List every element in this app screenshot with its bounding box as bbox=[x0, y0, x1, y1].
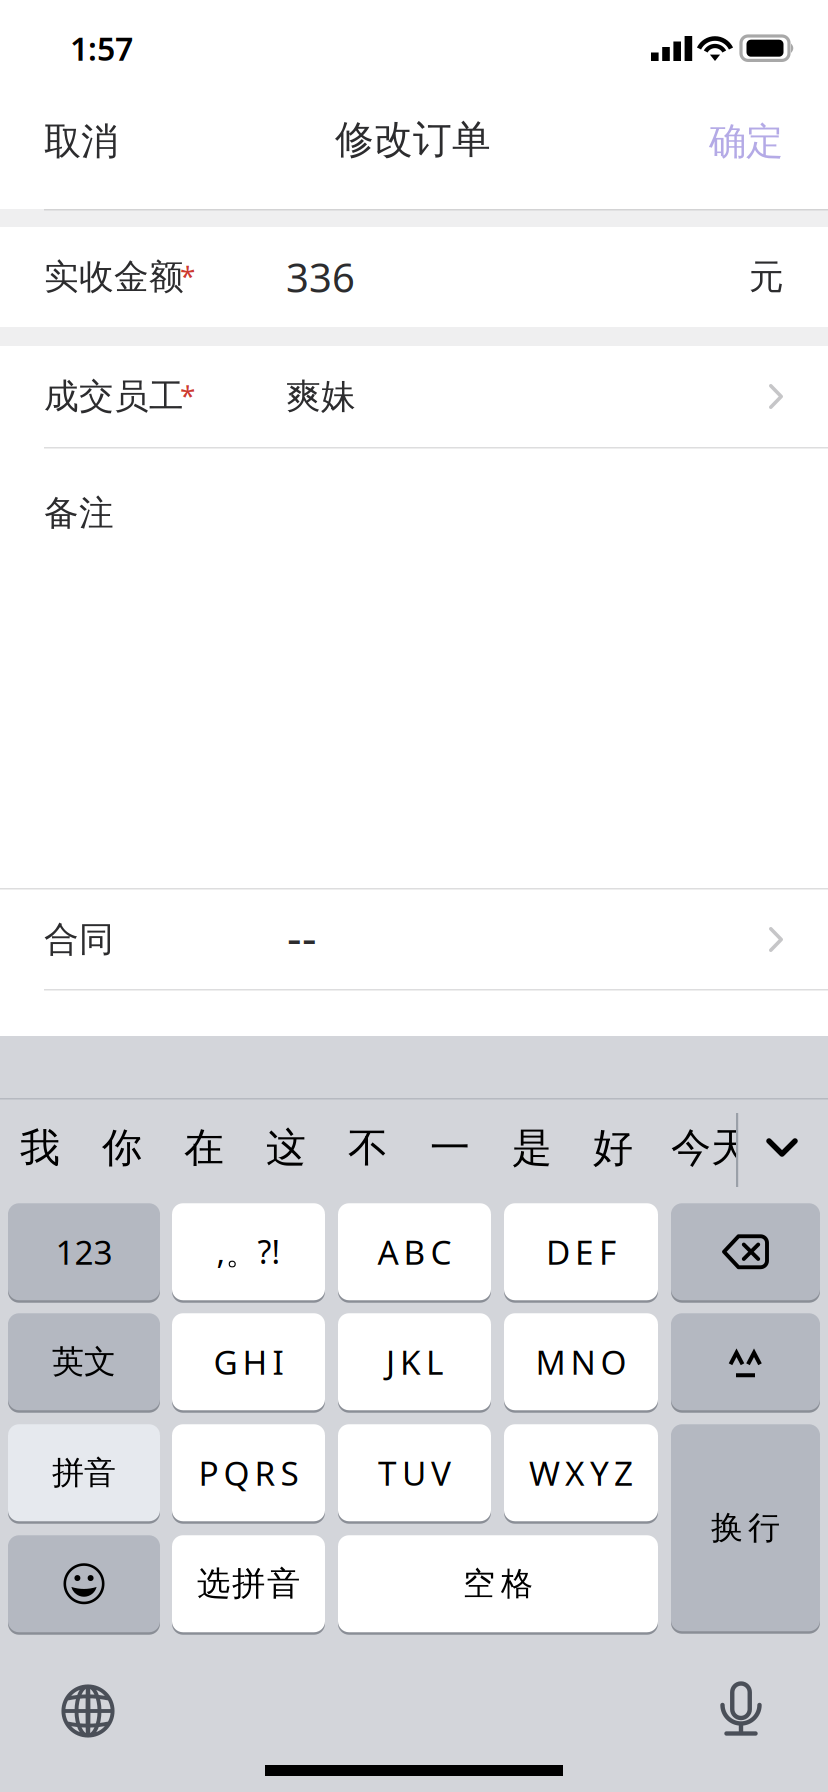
staticText: 取消 bbox=[44, 119, 118, 164]
staticText: 英文 bbox=[52, 1342, 116, 1381]
staticText: 元 bbox=[749, 256, 784, 298]
button[interactable]: 你 bbox=[83, 1098, 161, 1198]
staticText: 成交员工 bbox=[44, 375, 184, 418]
button[interactable]: 颜文字 bbox=[671, 1312, 820, 1411]
button[interactable]: 切换键盘 bbox=[43, 1673, 133, 1749]
button[interactable]: 这 bbox=[247, 1098, 325, 1198]
staticText: PQRS bbox=[198, 1451, 298, 1495]
button[interactable] bbox=[172, 1534, 325, 1633]
staticText: TUV bbox=[378, 1451, 451, 1495]
button[interactable]: 成交员工 bbox=[0, 346, 828, 447]
staticText: 123 bbox=[55, 1230, 112, 1274]
button[interactable]: 好 bbox=[574, 1098, 652, 1198]
button[interactable] bbox=[671, 1423, 820, 1632]
button[interactable] bbox=[338, 1312, 491, 1411]
button[interactable]: 取消 bbox=[0, 81, 162, 202]
staticText: 好 bbox=[593, 1123, 633, 1172]
button[interactable]: 收起候选 bbox=[745, 1098, 819, 1198]
staticText: DEF bbox=[546, 1230, 616, 1274]
staticText: 合同 bbox=[44, 918, 114, 961]
button[interactable]: 删除 bbox=[671, 1202, 820, 1301]
button[interactable] bbox=[504, 1202, 658, 1301]
button[interactable] bbox=[338, 1534, 658, 1633]
button[interactable] bbox=[172, 1312, 325, 1411]
button[interactable] bbox=[338, 1202, 491, 1301]
button[interactable]: 确定 bbox=[664, 81, 828, 202]
staticText: GHI bbox=[213, 1340, 283, 1384]
staticText: WXYZ bbox=[529, 1451, 633, 1495]
button[interactable] bbox=[8, 1423, 160, 1522]
staticText: 336 bbox=[286, 250, 355, 303]
staticText: 我 bbox=[20, 1123, 60, 1172]
staticText: 拼音 bbox=[52, 1453, 116, 1492]
staticText: 备注 bbox=[44, 492, 114, 535]
button[interactable]: 合同 bbox=[0, 889, 828, 990]
button[interactable]: 一 bbox=[411, 1098, 489, 1198]
staticText: * bbox=[180, 257, 195, 295]
staticText: * bbox=[180, 377, 195, 414]
button[interactable]: 我 bbox=[1, 1098, 79, 1198]
button[interactable]: 今天 bbox=[671, 1098, 767, 1198]
staticText: 实收金额 bbox=[44, 256, 184, 298]
staticText: ,。?! bbox=[216, 1230, 280, 1273]
staticText: ABC bbox=[377, 1230, 451, 1274]
staticText: 你 bbox=[102, 1123, 142, 1172]
staticText: -- bbox=[287, 906, 317, 967]
staticText: 选拼音 bbox=[197, 1563, 300, 1604]
button[interactable]: 在 bbox=[165, 1098, 243, 1198]
staticText: 换行 bbox=[711, 1508, 780, 1547]
button[interactable] bbox=[504, 1312, 658, 1411]
button[interactable]: 不 bbox=[329, 1098, 407, 1198]
staticText: 空格 bbox=[463, 1564, 533, 1603]
button[interactable] bbox=[172, 1423, 325, 1522]
button[interactable]: 是 bbox=[493, 1098, 571, 1198]
staticText: 这 bbox=[266, 1123, 306, 1172]
button[interactable] bbox=[8, 1202, 160, 1301]
button[interactable] bbox=[504, 1423, 658, 1522]
staticText: 确定 bbox=[709, 119, 783, 164]
staticText: 今天 bbox=[671, 1123, 751, 1172]
staticText: JKL bbox=[386, 1340, 443, 1384]
staticText: 修改订单 bbox=[335, 116, 491, 163]
button[interactable] bbox=[172, 1202, 325, 1301]
staticText: MNO bbox=[535, 1340, 626, 1384]
button[interactable]: 语音输入 bbox=[696, 1671, 786, 1747]
button[interactable] bbox=[338, 1423, 491, 1522]
button[interactable] bbox=[8, 1312, 160, 1411]
staticText: 在 bbox=[184, 1123, 224, 1172]
staticText: 是 bbox=[512, 1123, 552, 1172]
staticText: 一 bbox=[430, 1123, 470, 1172]
staticText: 1:57 bbox=[70, 27, 133, 69]
button[interactable]: 表情 bbox=[8, 1534, 160, 1633]
staticText: 不 bbox=[348, 1123, 388, 1172]
staticText: 爽妹 bbox=[286, 375, 356, 418]
